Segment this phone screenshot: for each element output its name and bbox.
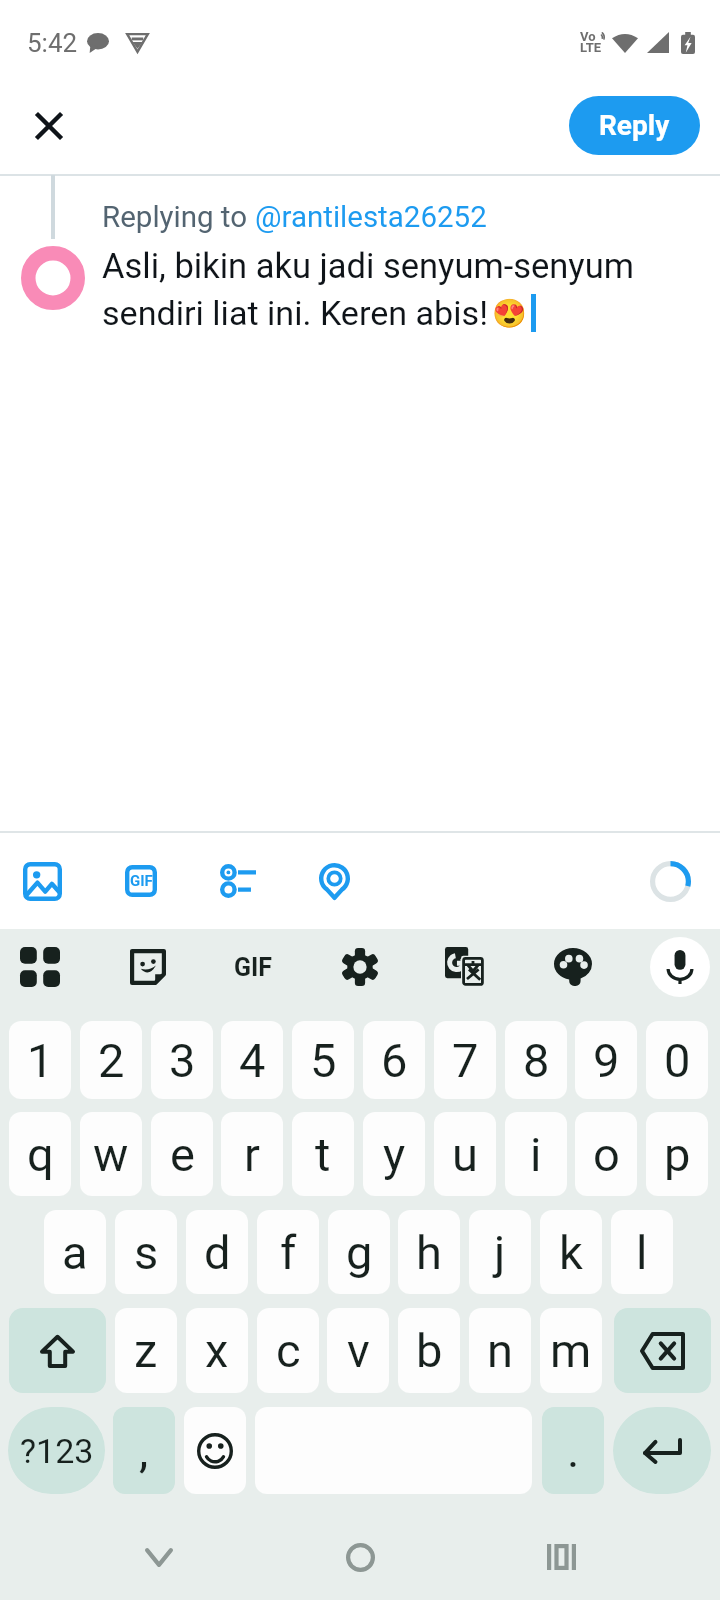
button[interactable]: r bbox=[221, 1112, 283, 1196]
button[interactable]: Translate bbox=[435, 937, 495, 997]
staticText: 5 bbox=[310, 1033, 337, 1088]
button[interactable]: Voice input bbox=[650, 937, 710, 997]
staticText: i bbox=[530, 1127, 542, 1182]
button[interactable]: i bbox=[505, 1112, 567, 1196]
button[interactable]: , bbox=[113, 1407, 175, 1494]
staticText: b bbox=[416, 1323, 443, 1378]
staticText: j bbox=[494, 1225, 506, 1280]
staticText: u bbox=[452, 1127, 478, 1182]
button[interactable]: f bbox=[257, 1210, 319, 1294]
button[interactable]: s bbox=[115, 1210, 177, 1294]
button[interactable]: e bbox=[151, 1112, 213, 1196]
button[interactable]: 1 bbox=[9, 1021, 71, 1099]
button[interactable]: u bbox=[434, 1112, 496, 1196]
staticText: 3 bbox=[169, 1033, 196, 1088]
button[interactable]: n bbox=[469, 1308, 531, 1393]
staticText: l bbox=[636, 1225, 648, 1280]
button[interactable]: 6 bbox=[363, 1021, 425, 1099]
staticText: 1 bbox=[27, 1033, 54, 1088]
button[interactable]: l bbox=[611, 1210, 673, 1294]
button[interactable]: c bbox=[257, 1308, 319, 1393]
staticText: r bbox=[244, 1127, 260, 1182]
button[interactable]: 8 bbox=[505, 1021, 567, 1099]
staticText: m bbox=[550, 1323, 592, 1378]
button[interactable]: m bbox=[540, 1308, 602, 1393]
button[interactable]: p bbox=[646, 1112, 708, 1196]
button[interactable]: ?123 bbox=[8, 1407, 105, 1494]
button[interactable]: Stickers bbox=[118, 937, 178, 997]
button[interactable]: Shift bbox=[9, 1308, 106, 1393]
button[interactable]: q bbox=[9, 1112, 71, 1196]
button[interactable]: Add GIF bbox=[96, 836, 186, 926]
staticText: h bbox=[416, 1225, 442, 1280]
button[interactable]: b bbox=[398, 1308, 460, 1393]
button[interactable]: z bbox=[115, 1308, 177, 1393]
staticText: p bbox=[664, 1127, 691, 1182]
button[interactable]: . bbox=[542, 1407, 604, 1494]
button[interactable]: Backspace bbox=[614, 1308, 711, 1393]
staticText: o bbox=[593, 1127, 620, 1182]
staticText: 6 bbox=[381, 1033, 408, 1088]
button[interactable]: Close bbox=[13, 90, 85, 162]
button[interactable]: v bbox=[327, 1308, 389, 1393]
button[interactable]: Reply bbox=[569, 96, 700, 155]
staticText: GIF bbox=[234, 953, 273, 982]
button[interactable]: 5 bbox=[292, 1021, 354, 1099]
button[interactable]: Settings bbox=[330, 937, 390, 997]
staticText: @rantilesta26252 bbox=[255, 200, 487, 235]
staticText: t bbox=[315, 1127, 331, 1182]
button[interactable]: d bbox=[186, 1210, 248, 1294]
staticText: y bbox=[383, 1127, 406, 1182]
button[interactable]: Enter bbox=[613, 1407, 711, 1494]
button[interactable]: Emoji bbox=[184, 1407, 246, 1494]
staticText: 7 bbox=[452, 1033, 479, 1088]
button[interactable]: Characters remaining bbox=[639, 850, 701, 912]
staticText: , bbox=[139, 1423, 149, 1478]
button[interactable]: Add poll bbox=[193, 836, 283, 926]
button[interactable]: x bbox=[186, 1308, 248, 1393]
staticText: w bbox=[93, 1127, 129, 1182]
button[interactable]: 2 bbox=[80, 1021, 142, 1099]
button[interactable]: 4 bbox=[221, 1021, 283, 1099]
button[interactable]: Themes bbox=[543, 937, 603, 997]
button[interactable]: w bbox=[80, 1112, 142, 1196]
staticText: ?123 bbox=[20, 1431, 94, 1471]
staticText: GIF bbox=[130, 872, 153, 890]
staticText: v bbox=[347, 1323, 370, 1378]
staticText: 😍 bbox=[492, 297, 527, 330]
button[interactable]: 0 bbox=[646, 1021, 708, 1099]
staticText: d bbox=[204, 1225, 231, 1280]
staticText: Reply bbox=[599, 109, 670, 142]
staticText: 9 bbox=[593, 1033, 620, 1088]
staticText: . bbox=[567, 1423, 580, 1478]
button[interactable]: a bbox=[44, 1210, 106, 1294]
staticText: c bbox=[276, 1323, 301, 1378]
staticText: n bbox=[487, 1323, 513, 1378]
staticText: g bbox=[346, 1225, 373, 1280]
staticText: k bbox=[559, 1225, 583, 1280]
staticText: LTE bbox=[580, 40, 602, 55]
staticText: s bbox=[134, 1225, 159, 1280]
button[interactable]: 9 bbox=[575, 1021, 637, 1099]
button[interactable]: o bbox=[575, 1112, 637, 1196]
button[interactable]: Apps bbox=[10, 937, 70, 997]
button[interactable]: 3 bbox=[151, 1021, 213, 1099]
button[interactable]: Add photo bbox=[0, 836, 87, 926]
staticText: Asli, bikin aku jadi senyum-senyum bbox=[102, 246, 634, 286]
button[interactable]: y bbox=[363, 1112, 425, 1196]
button[interactable]: k bbox=[540, 1210, 602, 1294]
button[interactable]: GIF bbox=[223, 937, 283, 997]
button[interactable]: Recent apps bbox=[526, 1522, 596, 1592]
staticText: Vo bbox=[580, 29, 596, 44]
button[interactable]: Add location bbox=[289, 836, 379, 926]
button[interactable]: h bbox=[398, 1210, 460, 1294]
button[interactable]: Home bbox=[325, 1522, 395, 1592]
button[interactable]: j bbox=[469, 1210, 531, 1294]
button[interactable]: g bbox=[328, 1210, 390, 1294]
staticText: 5:42 bbox=[27, 28, 78, 58]
button[interactable]: 7 bbox=[434, 1021, 496, 1099]
button[interactable]: Back bbox=[124, 1522, 194, 1592]
button[interactable]: t bbox=[292, 1112, 354, 1196]
staticText: z bbox=[134, 1323, 158, 1378]
